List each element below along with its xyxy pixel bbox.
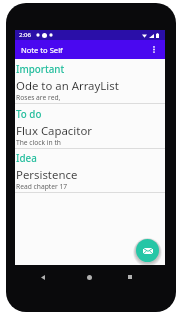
button[interactable]: Recent apps (123, 265, 137, 289)
staticText: Flux Capacitor (16, 123, 92, 139)
button[interactable]: Important (15, 59, 165, 104)
staticText: Important (16, 63, 65, 76)
staticText: Persistence (16, 167, 78, 183)
button[interactable]: To do (15, 104, 165, 149)
button[interactable]: New note (136, 239, 159, 262)
staticText: Roses are red, (16, 93, 61, 102)
button[interactable]: Back (36, 265, 50, 289)
staticText: 2:06 (19, 31, 31, 39)
staticText: To do (16, 108, 42, 121)
staticText: Idea (16, 152, 37, 165)
staticText: The clock in th (16, 138, 62, 147)
button[interactable]: Home (82, 265, 96, 289)
button[interactable]: More options (146, 40, 162, 59)
button[interactable]: Idea (15, 148, 165, 193)
staticText: Read chapter 17 (16, 182, 68, 191)
staticText: Ode to an ArrayList (16, 78, 119, 94)
staticText: Note to Self (21, 45, 63, 55)
